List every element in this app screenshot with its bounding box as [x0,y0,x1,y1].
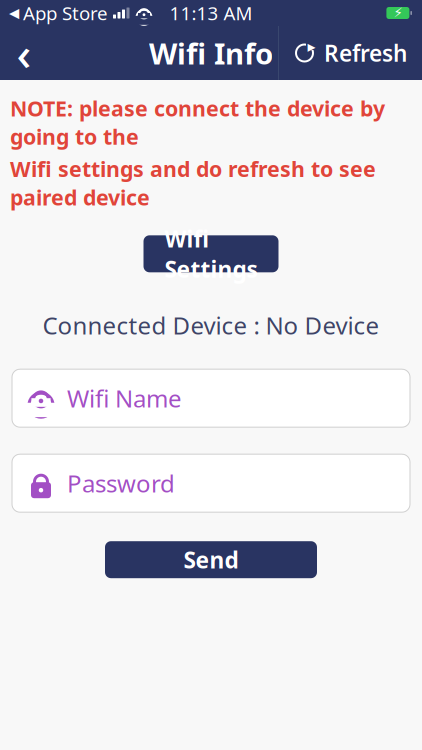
staticText: Connected Device : No Device [42,309,379,341]
staticText: NOTE: please connect the device by going… [10,94,385,151]
staticText: Send [183,545,238,575]
staticText: Wifi Name [67,382,182,414]
button[interactable]: Wifi Settings [143,235,278,272]
staticText: ‹ [16,23,31,83]
button[interactable]: Send [105,541,317,578]
staticText: Password [67,467,175,499]
staticText: 11:13 AM [169,1,252,25]
staticText: ◀ [9,5,19,20]
staticText: Wifi Info [149,33,273,72]
button[interactable]: ▸ [279,26,422,80]
staticText: Refresh [324,38,407,68]
staticText: ▸ [307,37,315,56]
staticText: ⚡︎ [393,5,402,20]
staticText: App Store [23,1,108,25]
button[interactable]: Password [12,454,410,512]
button[interactable]: Wifi Name [12,369,410,427]
button[interactable]: Back [0,26,48,80]
staticText: Wifi settings and do refresh to see pair… [10,155,376,211]
staticText: Wifi Settings [164,224,257,284]
